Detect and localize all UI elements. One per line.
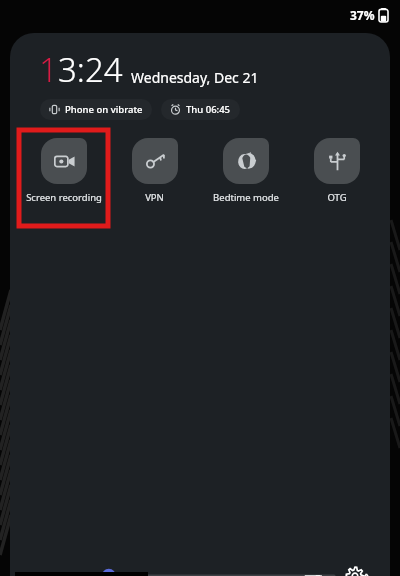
button[interactable]: Screen recording bbox=[18, 133, 109, 208]
staticText: Wednesday, Dec 21 bbox=[131, 68, 259, 87]
staticText: Phone on vibrate bbox=[65, 103, 143, 116]
button[interactable]: Bedtime mode bbox=[200, 133, 291, 208]
staticText: 3:24 bbox=[58, 47, 123, 92]
staticText: Thu 06:45 bbox=[186, 103, 231, 116]
staticText: 37% bbox=[350, 7, 375, 23]
staticText: Bedtime mode bbox=[213, 191, 279, 204]
button[interactable]: OTG bbox=[291, 133, 382, 208]
staticText: VPN bbox=[145, 191, 164, 204]
staticText: 1 bbox=[39, 47, 58, 92]
button[interactable]: VPN bbox=[109, 133, 200, 208]
staticText: OTG bbox=[327, 191, 347, 204]
button[interactable]: Phone on vibrate bbox=[40, 99, 152, 120]
staticText: Screen recording bbox=[26, 191, 102, 204]
button[interactable]: Thu 06:45 bbox=[161, 99, 240, 120]
